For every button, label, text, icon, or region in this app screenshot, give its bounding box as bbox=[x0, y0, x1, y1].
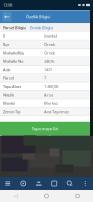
staticText: Ana Taşınmaz bbox=[44, 109, 69, 114]
staticText: Parsel Bilgisi bbox=[3, 25, 26, 30]
staticText: ◁ bbox=[13, 193, 17, 199]
staticText: Mahalle No bbox=[3, 59, 23, 64]
button[interactable]: Measure bbox=[31, 177, 46, 190]
button[interactable]: Emlak Bilgisi bbox=[30, 25, 53, 30]
button[interactable]: Back bbox=[1, 10, 13, 23]
staticText: Merkez bbox=[44, 101, 58, 106]
staticText: Örnek bbox=[44, 50, 55, 55]
staticText: 34076 bbox=[44, 59, 54, 64]
staticText: Zemin Tip bbox=[3, 109, 20, 114]
staticText: Mevkii bbox=[3, 101, 15, 106]
staticText: 1422 bbox=[44, 67, 52, 72]
button[interactable]: More bbox=[77, 177, 93, 190]
staticText: Örnek bbox=[44, 42, 55, 47]
staticText: İlçe bbox=[3, 42, 9, 47]
staticText: ← bbox=[4, 13, 10, 21]
staticText: Tapu Alanı bbox=[3, 84, 21, 89]
button[interactable]: Home bbox=[31, 190, 62, 202]
staticText: Arsa bbox=[44, 92, 53, 97]
button[interactable]: My location bbox=[15, 177, 31, 190]
staticText: Mahalle/Köy bbox=[3, 50, 24, 55]
staticText: Emlak Bilgisi bbox=[30, 25, 53, 30]
staticText: 13:08 bbox=[3, 2, 12, 8]
staticText: Özellik Bilgisi bbox=[26, 14, 50, 19]
staticText: Taşınmaza Git bbox=[31, 126, 58, 131]
button[interactable]: Back bbox=[0, 190, 31, 202]
staticText: Ada bbox=[3, 67, 10, 72]
button[interactable]: Layers bbox=[0, 177, 15, 190]
button[interactable]: Parsel Bilgisi bbox=[3, 25, 26, 30]
button[interactable]: Search bbox=[62, 177, 77, 190]
staticText: 7 bbox=[44, 75, 46, 81]
staticText: İstanbul bbox=[44, 33, 57, 39]
staticText: İl bbox=[3, 33, 5, 39]
button[interactable]: Select area bbox=[46, 177, 62, 190]
staticText: Nitelik bbox=[3, 92, 14, 97]
button[interactable]: Taşınmaza Git bbox=[0, 122, 90, 136]
button[interactable]: Recents bbox=[62, 190, 93, 202]
staticText: Parsel bbox=[3, 75, 14, 81]
staticText: 1.360,00 bbox=[44, 84, 58, 89]
